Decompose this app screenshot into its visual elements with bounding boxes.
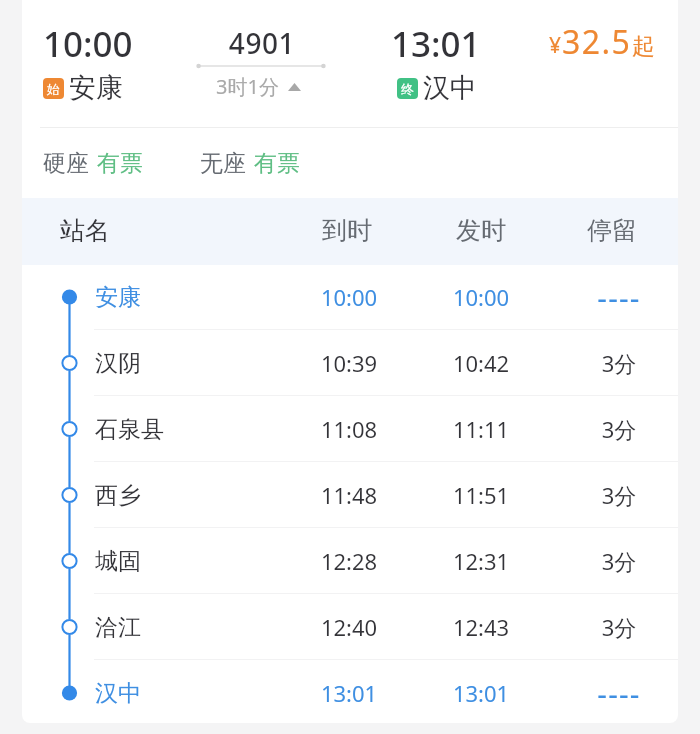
- staticText: 汉阴: [95, 349, 141, 378]
- staticText: 12:28: [289, 546, 409, 576]
- staticText: 3分: [559, 480, 678, 510]
- staticText: 起: [632, 32, 655, 61]
- button[interactable]: 西乡: [22, 462, 678, 528]
- staticText: 10:00: [43, 20, 133, 68]
- staticText: 洽江: [95, 613, 141, 642]
- staticText: 10:00: [289, 282, 409, 312]
- staticText: ----: [559, 277, 678, 318]
- staticText: 10:42: [421, 348, 541, 378]
- button[interactable]: 汉中: [22, 660, 678, 723]
- staticText: ----: [559, 673, 678, 714]
- button[interactable]: 10:00: [22, 0, 678, 127]
- button[interactable]: 城固: [22, 528, 678, 594]
- staticText: 10:39: [289, 348, 409, 378]
- button[interactable]: 安康: [22, 264, 678, 330]
- staticText: ¥: [549, 31, 562, 60]
- staticText: 终: [401, 81, 414, 97]
- staticText: 13:01: [421, 678, 541, 708]
- staticText: 有票: [97, 149, 143, 178]
- staticText: 12:31: [421, 546, 541, 576]
- staticText: 石泉县: [95, 415, 164, 444]
- staticText: 汉中: [423, 71, 477, 105]
- staticText: 10:00: [421, 282, 541, 312]
- staticText: 停留: [552, 215, 672, 246]
- staticText: 11:08: [289, 414, 409, 444]
- staticText: 11:48: [289, 480, 409, 510]
- staticText: 3分: [559, 546, 678, 576]
- staticText: 发时: [421, 215, 541, 246]
- staticText: 3分: [559, 348, 678, 378]
- staticText: 城固: [95, 547, 141, 576]
- button[interactable]: 汉阴: [22, 330, 678, 396]
- button[interactable]: 硬座: [22, 128, 678, 198]
- staticText: 安康: [69, 71, 123, 105]
- staticText: 安康: [95, 283, 141, 312]
- staticText: 站名: [60, 215, 110, 246]
- staticText: 13:01: [391, 20, 481, 68]
- staticText: 11:51: [421, 480, 541, 510]
- other: 收起行程: [288, 83, 301, 91]
- button[interactable]: 石泉县: [22, 396, 678, 462]
- staticText: 无座: [200, 149, 246, 178]
- staticText: 11:11: [421, 414, 541, 444]
- button[interactable]: 3时1分: [216, 73, 301, 100]
- staticText: 4901: [198, 24, 326, 62]
- button[interactable]: 洽江: [22, 594, 678, 660]
- staticText: 有票: [254, 149, 300, 178]
- staticText: 汉中: [95, 679, 141, 708]
- staticText: 3分: [559, 414, 678, 444]
- staticText: 13:01: [289, 678, 409, 708]
- staticText: 到时: [287, 215, 407, 246]
- staticText: 西乡: [95, 481, 141, 510]
- staticText: 12:40: [289, 612, 409, 642]
- staticText: 12:43: [421, 612, 541, 642]
- staticText: 硬座: [43, 149, 89, 178]
- staticText: 3时1分: [216, 73, 279, 100]
- staticText: 始: [47, 81, 60, 97]
- staticText: 3分: [559, 612, 678, 642]
- staticText: 32.5: [562, 20, 632, 64]
